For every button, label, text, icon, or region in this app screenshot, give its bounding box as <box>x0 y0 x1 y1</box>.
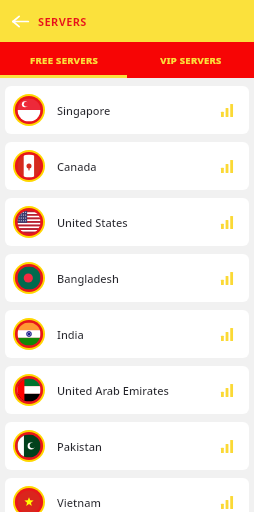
button[interactable]: Singapore <box>5 86 249 134</box>
staticText: Pakistan <box>57 439 221 454</box>
button[interactable]: United States <box>5 198 249 246</box>
button[interactable]: United Arab Emirates <box>5 366 249 414</box>
staticText: United States <box>57 215 221 230</box>
button[interactable]: FREE SERVERS <box>0 42 127 78</box>
staticText: Canada <box>57 159 221 174</box>
button[interactable]: Pakistan <box>5 422 249 470</box>
button[interactable]: Bangladesh <box>5 254 249 302</box>
staticText: Vietnam <box>57 495 221 510</box>
button[interactable]: India <box>5 310 249 358</box>
staticText: Singapore <box>57 103 221 118</box>
button[interactable]: Vietnam <box>5 478 249 512</box>
staticText: FREE SERVERS <box>30 54 98 67</box>
button[interactable]: Back <box>6 7 34 35</box>
button[interactable]: VIP SERVERS <box>127 42 254 78</box>
staticText: SERVERS <box>38 14 87 29</box>
staticText: United Arab Emirates <box>57 383 221 398</box>
button[interactable]: Canada <box>5 142 249 190</box>
staticText: VIP SERVERS <box>160 54 222 67</box>
staticText: India <box>57 327 221 342</box>
staticText: Bangladesh <box>57 271 221 286</box>
